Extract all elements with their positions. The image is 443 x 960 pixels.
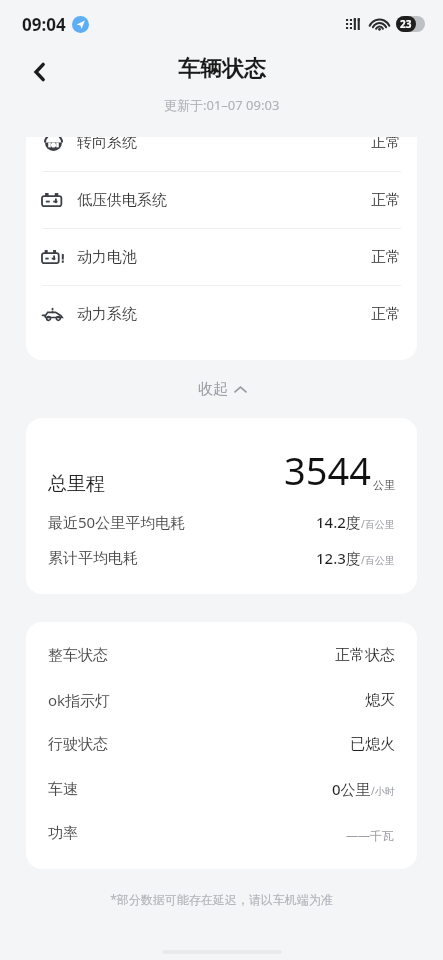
staticText: 已熄火 (350, 735, 395, 754)
staticText: *部分数据可能存在延迟，请以车机端为准 (0, 891, 443, 907)
staticText: 正常 (371, 191, 401, 210)
staticText: 最近50公里平均电耗 (48, 512, 186, 532)
button[interactable]: 行驶状态 (48, 735, 395, 754)
staticText: 正常 (371, 305, 401, 324)
staticText: 转向系统 (77, 137, 137, 152)
button[interactable]: 低压供电系统 (26, 172, 417, 228)
button[interactable]: ok指示灯 (48, 690, 395, 710)
staticText: 14.2度 (316, 512, 361, 532)
staticText: /百公里 (361, 553, 395, 567)
staticText: 总里程 (48, 472, 105, 496)
staticText: 12.3度 (316, 548, 361, 568)
staticText: 动力系统 (77, 305, 137, 324)
button[interactable]: 最近50公里平均电耗 (48, 512, 395, 532)
staticText: 3544 (284, 444, 371, 496)
staticText: 收起 (198, 380, 228, 399)
button[interactable]: 动力电池 (26, 229, 417, 285)
staticText: 动力电池 (77, 248, 137, 267)
staticText: 正常 (371, 137, 401, 152)
staticText: 低压供电系统 (77, 191, 167, 210)
staticText: 行驶状态 (48, 735, 108, 754)
staticText: 车速 (48, 780, 78, 799)
staticText: 正常 (371, 248, 401, 267)
staticText: 公里 (373, 478, 395, 492)
button[interactable]: 收起 (184, 372, 260, 407)
staticText: 0公里 (332, 779, 371, 799)
button[interactable]: 车速 (48, 779, 395, 799)
staticText: 更新于:01–07 09:03 (164, 96, 280, 114)
button[interactable]: 动力系统 (26, 286, 417, 342)
staticText: 车辆状态 (178, 55, 266, 83)
staticText: 累计平均电耗 (48, 549, 138, 568)
staticText: 整车状态 (48, 646, 108, 665)
button[interactable]: 总里程 (48, 444, 395, 496)
staticText: /百公里 (361, 517, 395, 531)
button[interactable]: 转向系统 (42, 137, 401, 159)
button[interactable]: 整车状态 (48, 646, 395, 665)
staticText: 熄灭 (365, 691, 395, 710)
staticText: /小时 (371, 784, 395, 798)
staticText: 功率 (48, 824, 78, 843)
staticText: 09:04 (22, 13, 66, 36)
button[interactable]: 功率 (48, 824, 395, 843)
button[interactable]: Back (18, 50, 62, 94)
staticText: ——千瓦 (346, 827, 395, 843)
staticText: 23 (400, 17, 412, 31)
staticText: ok指示灯 (48, 690, 111, 710)
staticText: 正常状态 (335, 646, 395, 665)
button[interactable]: 累计平均电耗 (48, 548, 395, 568)
